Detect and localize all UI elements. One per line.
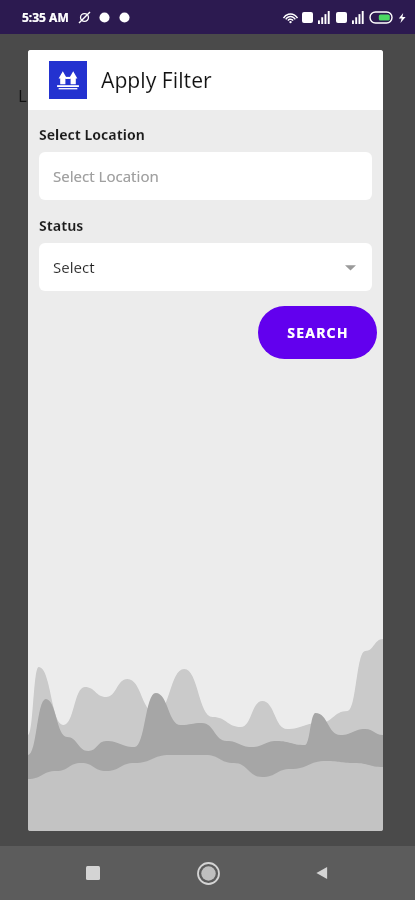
button[interactable]: Recent apps bbox=[71, 851, 115, 895]
staticText: Apply Filter bbox=[101, 66, 212, 95]
button[interactable]: Back bbox=[300, 851, 344, 895]
button[interactable]: Select Location bbox=[39, 152, 372, 200]
staticText: Status bbox=[39, 216, 84, 235]
staticText: Select Location bbox=[39, 125, 145, 144]
staticText: SEARCH bbox=[287, 323, 349, 342]
button[interactable]: Select bbox=[39, 243, 372, 291]
staticText: L bbox=[18, 84, 27, 107]
staticText: Select Location bbox=[53, 166, 159, 186]
staticText: Select bbox=[53, 257, 95, 277]
button[interactable]: SEARCH bbox=[258, 306, 377, 359]
staticText: 5:35 AM bbox=[22, 9, 69, 25]
button[interactable]: Home bbox=[186, 851, 230, 895]
